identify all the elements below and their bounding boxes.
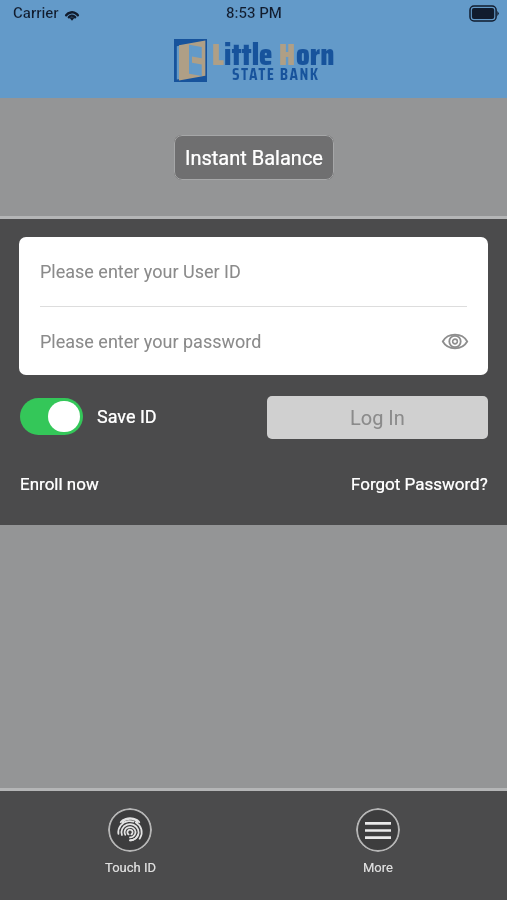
button[interactable]: Touch ID xyxy=(86,808,174,875)
staticText: H xyxy=(279,30,296,79)
button[interactable]: Please enter your User ID xyxy=(19,237,488,306)
button[interactable]: Instant Balance xyxy=(174,135,334,180)
staticText: Enroll now xyxy=(20,474,99,494)
button[interactable]: Forgot Password? xyxy=(351,474,488,494)
button[interactable]: Enroll now xyxy=(20,474,99,494)
staticText: Touch ID xyxy=(105,860,156,875)
staticText: Carrier xyxy=(13,4,59,22)
staticText: Please enter your User ID xyxy=(40,261,241,282)
staticText: ittle xyxy=(224,30,279,79)
staticText: Instant Balance xyxy=(185,146,323,169)
button[interactable]: Log In xyxy=(267,396,488,439)
staticText: STATE BANK xyxy=(232,61,320,88)
staticText: More xyxy=(363,860,393,875)
button[interactable]: Save ID xyxy=(20,398,157,435)
button[interactable]: Show password xyxy=(436,322,474,360)
button[interactable]: More xyxy=(334,808,422,875)
staticText: Please enter your password xyxy=(40,331,262,352)
staticText: 8:53 PM xyxy=(226,4,282,22)
staticText: orn xyxy=(296,30,335,79)
staticText: L xyxy=(212,30,224,79)
button[interactable]: Please enter your password xyxy=(19,307,488,375)
staticText: Log In xyxy=(350,406,405,429)
staticText: Forgot Password? xyxy=(351,474,488,494)
staticText: Save ID xyxy=(97,406,157,427)
